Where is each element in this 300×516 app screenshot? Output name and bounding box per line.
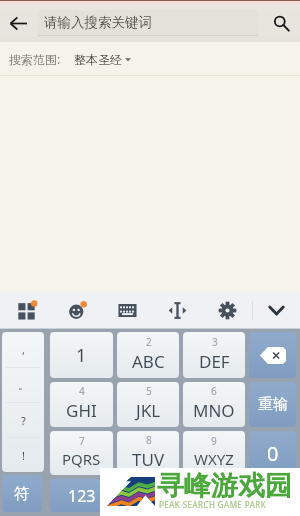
staticText: 4 [79, 384, 85, 398]
staticText: TUV [132, 448, 165, 471]
button[interactable]: Keyboard layout [102, 292, 152, 329]
button[interactable] [249, 479, 296, 512]
staticText: 9 [211, 434, 217, 448]
staticText: 5 [146, 384, 152, 398]
button[interactable]: 整本圣经 [74, 52, 131, 67]
button[interactable] [183, 479, 245, 512]
staticText: DEF [199, 350, 230, 373]
button[interactable]: 重输 [249, 382, 296, 427]
staticText: ! [22, 448, 25, 463]
button[interactable]: Input methods [0, 292, 52, 329]
staticText: 寻峰游戏园 [157, 469, 292, 503]
staticText: 3 [212, 335, 218, 349]
staticText: 1 [76, 343, 87, 368]
staticText: GHI [66, 399, 97, 422]
staticText: 0 [267, 440, 279, 467]
staticText: JKL [136, 399, 161, 422]
button[interactable]: 8 [117, 431, 179, 475]
button[interactable]: , [2, 332, 44, 367]
staticText: 符 [14, 484, 30, 504]
button[interactable]: Backspace [249, 332, 296, 378]
button[interactable]: 4 [50, 382, 113, 427]
button[interactable] [117, 479, 179, 512]
button[interactable]: 5 [117, 382, 179, 427]
staticText: , [22, 342, 25, 357]
staticText: 123 [68, 485, 96, 507]
button[interactable]: 2 [117, 332, 179, 378]
staticText: 搜索范围: [9, 51, 61, 67]
button[interactable]: Settings [202, 292, 252, 329]
button[interactable]: Emoji [52, 292, 102, 329]
staticText: WXYZ [194, 449, 234, 469]
staticText: 整本圣经 [74, 52, 122, 67]
staticText: MNO [193, 399, 235, 422]
button[interactable]: 1 [50, 332, 113, 378]
button[interactable]: ? [2, 403, 44, 437]
button[interactable]: 3 [183, 332, 245, 378]
staticText: PEAK SEARCH GAME PARK [159, 499, 267, 510]
button[interactable]: 符 [2, 475, 42, 512]
button[interactable]: 。 [2, 368, 44, 402]
staticText: 7 [79, 434, 85, 448]
button[interactable]: 6 [183, 382, 245, 427]
staticText: ABC [132, 350, 165, 373]
button[interactable]: Search [262, 4, 300, 42]
button[interactable]: 0 [249, 431, 296, 475]
button[interactable]: Back [0, 4, 36, 42]
button[interactable]: Hide keyboard [253, 292, 300, 329]
button[interactable]: 7 [50, 431, 113, 475]
button[interactable]: Move cursor [152, 292, 202, 329]
staticText: 。 [18, 378, 29, 392]
staticText: PQRS [62, 449, 101, 469]
button[interactable]: ! [2, 438, 44, 472]
button[interactable]: 请输入搜索关键词 [38, 10, 258, 36]
staticText: 6 [211, 384, 217, 398]
staticText: 2 [146, 335, 152, 349]
button[interactable]: 123 [50, 479, 113, 512]
staticText: 请输入搜索关键词 [44, 14, 152, 31]
staticText: ? [21, 413, 26, 428]
staticText: 8 [146, 433, 152, 447]
button[interactable]: 9 [183, 431, 245, 475]
staticText: 重输 [258, 395, 288, 414]
